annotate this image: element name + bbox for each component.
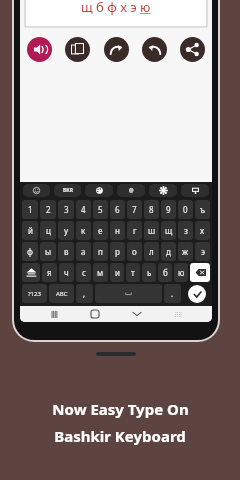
button[interactable]: Redo <box>104 37 129 62</box>
button[interactable]: щ <box>161 221 176 240</box>
staticText: 2 <box>46 204 51 215</box>
staticText: 1 <box>28 204 33 215</box>
button[interactable]: Theme <box>85 184 113 197</box>
button[interactable]: 9 <box>161 200 176 219</box>
button[interactable]: ь <box>142 263 156 282</box>
button[interactable]: Space <box>95 284 162 303</box>
staticText: 7 <box>132 204 137 215</box>
button[interactable]: Layout <box>181 184 209 197</box>
staticText: м <box>97 267 104 278</box>
button[interactable]: Copy <box>65 37 90 62</box>
button[interactable]: Speak <box>27 37 52 62</box>
button[interactable]: э <box>195 242 210 261</box>
button[interactable]: Keyboard switch <box>170 306 186 322</box>
button[interactable]: ?123 <box>22 284 47 303</box>
button[interactable]: @ <box>117 184 145 197</box>
button[interactable]: п <box>93 242 108 261</box>
button[interactable]: , <box>76 284 93 303</box>
button[interactable]: а <box>76 242 91 261</box>
staticText: к <box>81 225 86 236</box>
button[interactable]: у <box>58 221 74 240</box>
staticText: у <box>64 225 69 236</box>
button[interactable]: г <box>127 221 142 240</box>
staticText: ф <box>27 246 33 257</box>
button[interactable]: 1 <box>22 200 38 219</box>
button[interactable]: Settings <box>149 184 177 197</box>
button[interactable]: с <box>76 263 91 282</box>
button[interactable]: 0 <box>178 200 193 219</box>
button[interactable]: Emoji <box>23 184 50 197</box>
button[interactable]: 4 <box>76 200 91 219</box>
staticText: 5 <box>98 204 103 215</box>
staticText: а <box>81 246 86 257</box>
button[interactable]: в <box>58 242 74 261</box>
button[interactable]: ц <box>40 221 56 240</box>
staticText: с <box>82 267 86 278</box>
staticText: 6 <box>115 204 120 215</box>
button[interactable]: р <box>110 242 125 261</box>
button[interactable]: е <box>93 221 108 240</box>
button[interactable]: х <box>195 221 210 240</box>
button[interactable]: Hide keyboard <box>129 306 145 322</box>
button[interactable]: и <box>110 263 124 282</box>
button[interactable]: я <box>42 263 57 282</box>
button[interactable]: т <box>126 263 140 282</box>
button[interactable]: ы <box>40 242 56 261</box>
button[interactable]: й <box>22 221 38 240</box>
button[interactable]: 7 <box>127 200 142 219</box>
staticText: р <box>115 246 120 257</box>
staticText: , <box>83 288 86 299</box>
button[interactable]: Home <box>87 306 103 322</box>
button[interactable]: о <box>127 242 142 261</box>
button[interactable]: Shift <box>22 263 40 282</box>
staticText: н <box>115 225 120 236</box>
staticText: ж <box>182 246 189 257</box>
button[interactable]: BKR <box>54 184 81 197</box>
staticText: 3 <box>64 204 69 215</box>
button[interactable]: Enter <box>188 285 206 303</box>
button[interactable]: Recents <box>46 306 62 322</box>
staticText: щ б ф х э <box>81 0 140 16</box>
staticText: 4 <box>81 204 86 215</box>
button[interactable]: ъ <box>195 200 210 219</box>
staticText: ABC <box>56 290 68 298</box>
staticText: в <box>64 246 69 257</box>
button[interactable]: к <box>76 221 91 240</box>
button[interactable]: ABC <box>49 284 74 303</box>
button[interactable]: н <box>110 221 125 240</box>
button[interactable]: м <box>93 263 108 282</box>
button[interactable]: 2 <box>40 200 56 219</box>
staticText: . <box>171 288 174 299</box>
staticText: я <box>47 267 52 278</box>
staticText: ь <box>147 267 152 278</box>
button[interactable]: ф <box>22 242 38 261</box>
button[interactable]: ч <box>59 263 74 282</box>
button[interactable]: 5 <box>93 200 108 219</box>
staticText: й <box>28 225 33 236</box>
button[interactable]: з <box>178 221 193 240</box>
staticText: ?123 <box>28 290 41 298</box>
staticText: п <box>98 246 103 257</box>
button[interactable]: Undo <box>142 37 167 62</box>
button[interactable]: 6 <box>110 200 125 219</box>
button[interactable]: 3 <box>58 200 74 219</box>
staticText: г <box>133 225 137 236</box>
staticText: и <box>115 267 120 278</box>
button[interactable]: ю <box>174 263 188 282</box>
button[interactable]: л <box>144 242 159 261</box>
staticText: д <box>166 246 171 257</box>
staticText: о <box>132 246 137 257</box>
button[interactable]: . <box>164 284 181 303</box>
button[interactable]: ж <box>178 242 193 261</box>
button[interactable]: д <box>161 242 176 261</box>
button[interactable]: б <box>158 263 172 282</box>
staticText: ю <box>178 267 185 278</box>
button[interactable]: Share <box>180 37 205 62</box>
button[interactable]: ш <box>144 221 159 240</box>
staticText: ъ <box>200 204 205 215</box>
button[interactable]: 8 <box>144 200 159 219</box>
staticText: б <box>163 267 168 278</box>
button[interactable]: Backspace <box>190 263 210 282</box>
staticText: BKR <box>63 187 73 194</box>
staticText: ч <box>64 267 69 278</box>
